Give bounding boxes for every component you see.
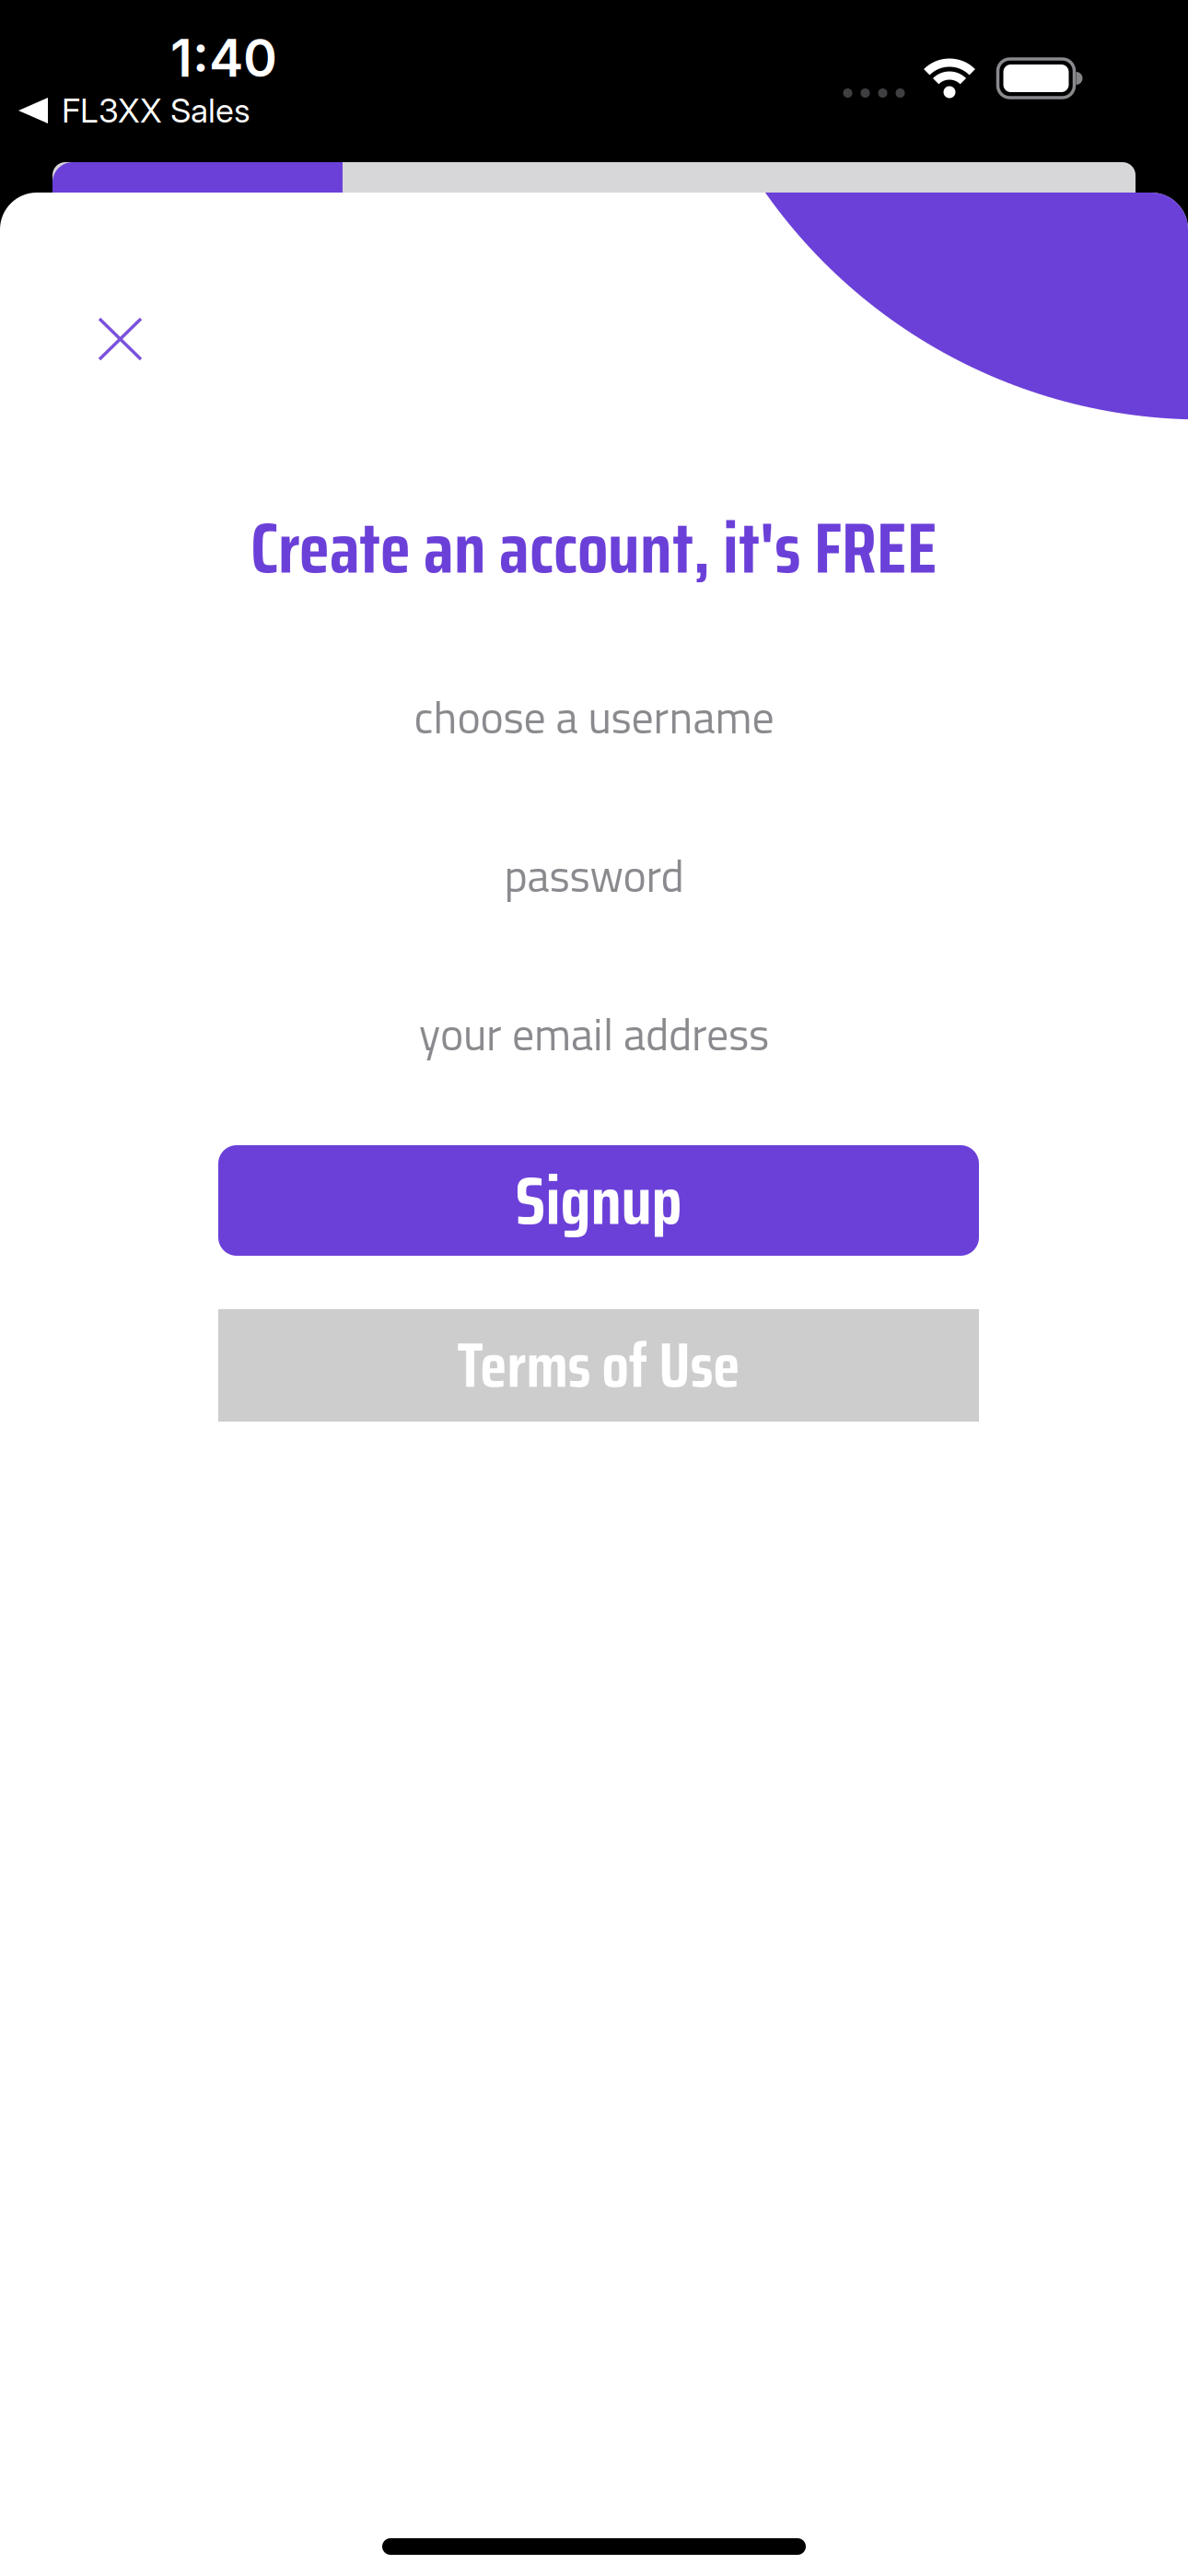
staticText: password <box>504 842 684 909</box>
staticText: FL3XX Sales <box>62 90 250 131</box>
staticText: Create an account, it's FREE <box>250 493 938 603</box>
button[interactable]: Back to FL3XX Sales <box>18 90 250 131</box>
button[interactable]: Signup <box>218 1145 979 1256</box>
button[interactable]: password <box>214 825 974 926</box>
staticText: Terms of Use <box>457 1317 740 1414</box>
button[interactable]: Terms of Use <box>218 1309 979 1422</box>
staticText: your email address <box>419 1000 769 1067</box>
staticText: choose a username <box>414 683 774 750</box>
button[interactable]: choose a username <box>214 666 974 767</box>
staticText: 1:40 <box>170 27 277 89</box>
button[interactable]: Close <box>79 299 161 380</box>
button[interactable]: your email address <box>214 983 974 1084</box>
staticText: Signup <box>515 1147 682 1254</box>
